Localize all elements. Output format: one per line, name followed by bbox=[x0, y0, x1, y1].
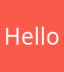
staticText: Hello bbox=[4, 21, 60, 51]
